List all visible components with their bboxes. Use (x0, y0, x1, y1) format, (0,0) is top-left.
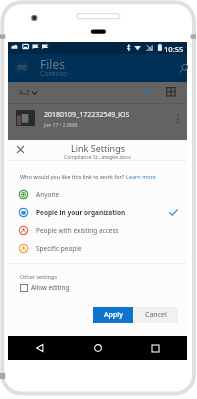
staticText: Contoso (40, 69, 68, 79)
button[interactable]: Apply (93, 307, 133, 323)
button[interactable]: Search (178, 62, 192, 76)
staticText: Other settings (20, 273, 58, 280)
staticText: Files (40, 56, 65, 72)
button[interactable]: Back (32, 340, 48, 356)
staticText: 20180109_172232549_iOS (44, 110, 130, 120)
button[interactable]: Recents (147, 340, 163, 356)
staticText: Allow editing (31, 283, 70, 292)
staticText: Apply (104, 310, 123, 320)
staticText: Cancel (145, 310, 167, 320)
staticText: Jan 17 • 2.8MB (44, 122, 78, 129)
button[interactable]: Close (13, 142, 27, 156)
button[interactable]: 20180109_172232549_iOS (8, 104, 187, 140)
staticText: Link Settings (71, 142, 125, 154)
staticText: Who would you like this link to work for… (20, 173, 126, 180)
button[interactable]: More options (172, 108, 186, 122)
button[interactable]: Specific people (18, 239, 187, 257)
button[interactable]: People with existing access (18, 221, 187, 239)
button[interactable]: People in your organization (18, 203, 187, 221)
button[interactable]: List view (143, 86, 157, 100)
staticText: Anyone (36, 190, 60, 199)
staticText: Specific people (36, 244, 82, 253)
button[interactable]: Home (90, 340, 106, 356)
button[interactable]: Grid view (166, 85, 180, 99)
button[interactable]: Account (14, 59, 29, 74)
button[interactable]: A-Z (19, 88, 37, 98)
staticText: People with existing access (36, 226, 119, 235)
staticText: A-Z (19, 88, 30, 98)
staticText: Compliance St...ategies.docx (64, 154, 131, 161)
staticText: Learn more (126, 173, 156, 180)
staticText: People in your organization (36, 208, 126, 217)
button[interactable]: Anyone (18, 185, 187, 203)
button[interactable]: Allow editing (20, 283, 187, 292)
staticText: 10:55 (164, 44, 184, 54)
button[interactable]: Cancel (134, 307, 178, 323)
